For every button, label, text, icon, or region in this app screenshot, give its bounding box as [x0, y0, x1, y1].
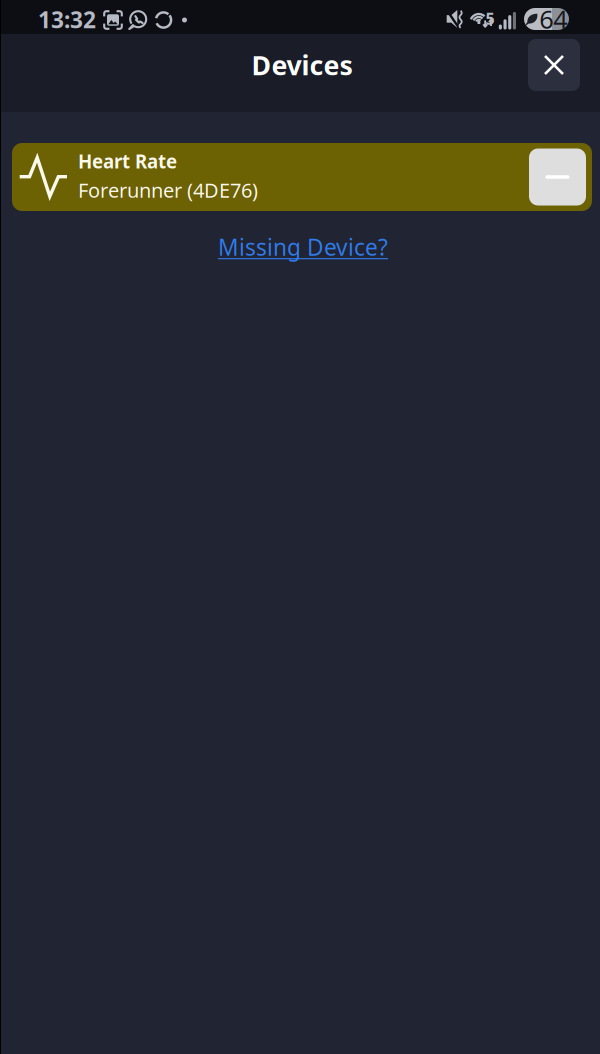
staticText: Forerunner (4DE76) [78, 177, 258, 203]
staticText: 64 [539, 2, 567, 36]
button[interactable]: Heart Rate [18, 143, 529, 211]
staticText: 5 [485, 8, 494, 29]
button[interactable]: Missing Device? [215, 232, 385, 262]
staticText: 13:32 [38, 4, 96, 34]
staticText: Heart Rate [78, 149, 177, 174]
staticText: Devices [251, 47, 352, 83]
button[interactable]: Close [528, 39, 580, 91]
staticText: Missing Device? [218, 232, 388, 262]
button[interactable]: Remove Forerunner (4DE76) [529, 143, 586, 211]
